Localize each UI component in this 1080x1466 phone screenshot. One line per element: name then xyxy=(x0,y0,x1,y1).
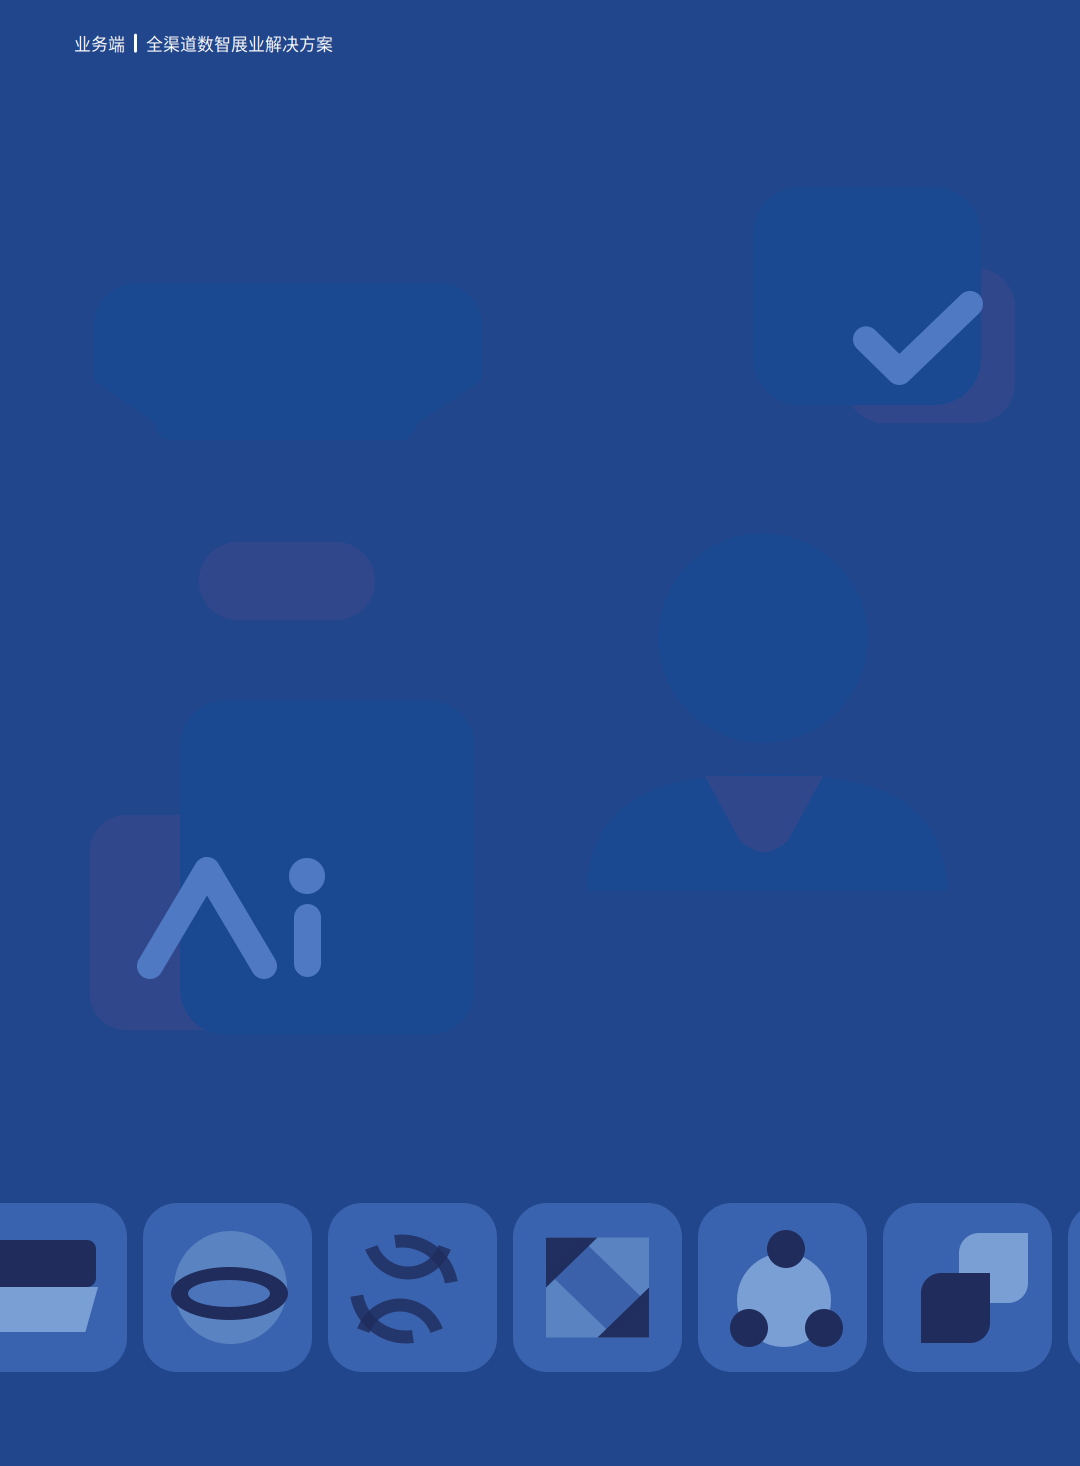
button[interactable]: More xyxy=(1068,1203,1080,1372)
staticText: 全渠道数智展业解决方案 xyxy=(146,31,333,55)
button[interactable]: Modules xyxy=(883,1203,1052,1372)
button[interactable]: Workspace xyxy=(513,1203,682,1372)
button[interactable]: Data platform xyxy=(0,1203,127,1372)
button[interactable]: Team xyxy=(698,1203,867,1372)
button[interactable]: Smart insight xyxy=(143,1203,312,1372)
staticText: 业务端 xyxy=(74,31,125,55)
button[interactable]: Connections xyxy=(328,1203,497,1372)
